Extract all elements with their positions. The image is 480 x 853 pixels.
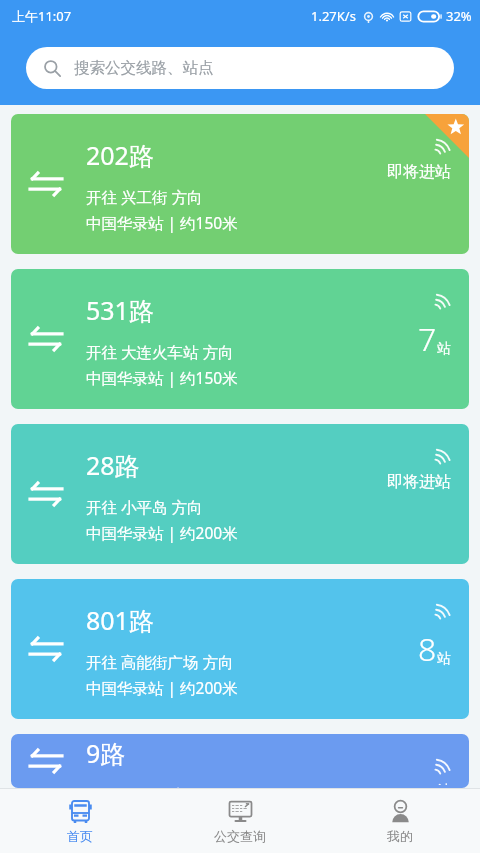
staticText: 公交查询	[214, 828, 266, 844]
staticText: 中国华录站 | 约150米	[86, 212, 238, 233]
staticText: 首页	[67, 828, 93, 844]
button[interactable]: 搜索公交线路、站点	[26, 47, 454, 89]
button[interactable]: 202路	[11, 114, 469, 254]
staticText: 上午11:07	[12, 7, 72, 25]
staticText: 28路	[86, 448, 140, 482]
staticText: 开往 大连火车站 方向	[86, 341, 234, 362]
button[interactable]: 首页	[0, 789, 160, 853]
staticText: 531路	[86, 293, 154, 327]
staticText: 1.27K/s	[311, 7, 356, 25]
button[interactable]: 531路	[11, 269, 469, 409]
button[interactable]: 公交查询	[160, 789, 320, 853]
staticText: 202路	[86, 138, 154, 172]
other: 公交查询	[228, 799, 253, 824]
staticText: 开往 兴工街 方向	[86, 186, 203, 207]
other: 我的	[388, 799, 413, 824]
button[interactable]: 801路	[11, 579, 469, 719]
button[interactable]: 28路	[11, 424, 469, 564]
staticText: 站	[437, 650, 451, 668]
staticText: 中国华录站 | 约200米	[86, 677, 238, 698]
staticText: 开往 小平岛 方向	[86, 496, 203, 517]
button[interactable]: 我的	[320, 789, 480, 853]
staticText: 中国华录站 | 约200米	[86, 522, 238, 543]
staticText: 9路	[86, 736, 126, 770]
staticText: 即将进站	[387, 162, 451, 182]
staticText: 站	[437, 340, 451, 358]
other: 首页	[68, 799, 93, 824]
staticText: 站	[437, 782, 451, 785]
staticText: 8	[418, 627, 437, 671]
staticText: 801路	[86, 603, 154, 637]
staticText: 32%	[446, 7, 472, 25]
staticText: 7	[418, 317, 437, 361]
staticText: 开往 高能街广场 方向	[86, 651, 234, 672]
staticText: 我的	[387, 828, 413, 844]
staticText: 中国华录站 | 约150米	[86, 367, 238, 388]
staticText: 即将进站	[387, 472, 451, 492]
button[interactable]: 9路	[11, 734, 469, 788]
staticText: 搜索公交线路、站点	[74, 58, 214, 78]
